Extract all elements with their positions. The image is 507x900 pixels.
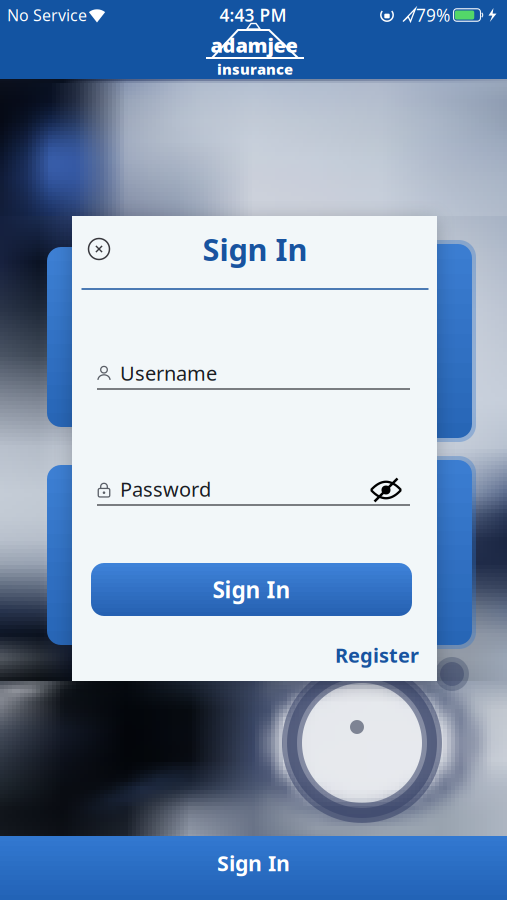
staticText: 79% — [416, 3, 450, 26]
button[interactable]: Username — [97, 356, 410, 396]
staticText: adamjee — [210, 32, 297, 58]
staticText: Sign In — [217, 849, 290, 877]
button[interactable]: Password — [97, 472, 410, 512]
staticText: Password — [120, 476, 211, 502]
staticText: Sign In — [202, 229, 307, 269]
button[interactable]: Sign In — [91, 563, 412, 616]
button[interactable]: Sign In — [0, 836, 507, 900]
staticText: Register — [335, 642, 419, 668]
staticText: 4:43 PM — [219, 3, 286, 26]
staticText: insurance — [217, 59, 293, 79]
button[interactable]: Register — [332, 642, 422, 668]
staticText: Sign In — [212, 574, 290, 604]
button[interactable]: Close — [84, 234, 114, 264]
button[interactable]: Show password — [366, 474, 406, 506]
staticText: No Service — [7, 4, 87, 26]
staticText: Username — [120, 360, 217, 386]
